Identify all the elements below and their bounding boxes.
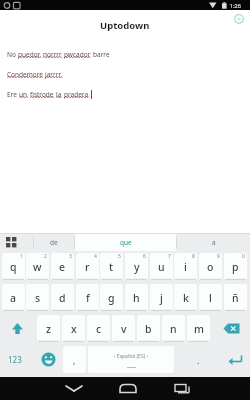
staticText: f [86, 291, 90, 305]
button[interactable]: que [75, 233, 176, 251]
button[interactable]: s [26, 284, 49, 311]
button[interactable]: g [100, 284, 123, 311]
staticText: 123 [8, 354, 22, 365]
staticText: t [109, 260, 114, 274]
button[interactable]: z [37, 315, 60, 342]
button[interactable]: c [87, 315, 110, 342]
staticText: 8 [192, 253, 195, 260]
staticText: o [207, 260, 214, 274]
staticText: 2 [44, 253, 47, 260]
button[interactable]: x [62, 315, 85, 342]
button[interactable] [116, 380, 140, 397]
button[interactable]: r [76, 253, 99, 280]
staticText: Condemore [7, 70, 43, 79]
button[interactable]: f [76, 284, 99, 311]
button[interactable]: de [34, 233, 74, 251]
button[interactable]: b [137, 315, 160, 342]
staticText: norrrr [43, 50, 62, 59]
button[interactable]: n [162, 315, 185, 342]
button[interactable]: 123 [0, 346, 35, 373]
button[interactable]: w [26, 253, 49, 280]
staticText: d [59, 291, 66, 305]
button[interactable]: p [224, 253, 247, 280]
button[interactable]: o [199, 253, 222, 280]
staticText: z [46, 322, 52, 336]
staticText: p [232, 260, 239, 274]
staticText: w [33, 260, 42, 274]
button[interactable]: j [150, 284, 173, 311]
button[interactable]: . [176, 346, 221, 373]
staticText: v [121, 322, 127, 336]
staticText: h [133, 291, 140, 305]
staticText: e [59, 260, 66, 274]
button[interactable]: a [2, 284, 25, 311]
staticText: u [158, 260, 165, 274]
staticText: 1:26 [230, 2, 241, 9]
staticText: l [209, 291, 212, 305]
staticText: , [73, 354, 76, 366]
staticText: . [197, 354, 200, 366]
button[interactable]: e [51, 253, 74, 280]
button[interactable] [0, 315, 35, 342]
staticText: 0 [242, 253, 245, 260]
button[interactable] [170, 380, 194, 397]
staticText: 4 [94, 253, 97, 260]
button[interactable] [6, 237, 17, 248]
staticText: barre [93, 50, 110, 59]
staticText: 1 [20, 253, 23, 260]
staticText: b [145, 322, 152, 336]
staticText: i [184, 260, 187, 274]
button[interactable]: ‹ Español (ES) › [88, 346, 174, 373]
staticText: ‹ Español (ES) › [114, 353, 148, 360]
staticText: pwcador [64, 50, 91, 59]
staticText: 5 [118, 253, 121, 260]
staticText: r [85, 260, 90, 274]
staticText: a [212, 238, 216, 247]
button[interactable]: t [100, 253, 123, 280]
staticText: un [19, 90, 28, 99]
staticText: fistrode [30, 90, 54, 99]
staticText: c [96, 322, 102, 336]
button[interactable]: v [112, 315, 135, 342]
button[interactable]: k [174, 284, 197, 311]
staticText: k [183, 291, 189, 305]
staticText: jarrrr [45, 70, 62, 79]
button[interactable]: h [125, 284, 148, 311]
staticText: q [10, 260, 17, 274]
staticText: de [50, 238, 58, 247]
staticText: g [108, 291, 115, 305]
button[interactable]: u [150, 253, 173, 280]
staticText: 3 [69, 253, 72, 260]
button[interactable] [62, 380, 86, 397]
staticText: Uptodown [100, 19, 150, 32]
staticText: s [35, 291, 41, 305]
staticText: n [170, 322, 177, 336]
button[interactable]: q [2, 253, 25, 280]
staticText: j [160, 291, 163, 305]
staticText: m [194, 322, 204, 336]
staticText: pradera [64, 90, 89, 99]
button[interactable] [36, 346, 61, 373]
staticText: 6 [143, 253, 146, 260]
button[interactable]: m [187, 315, 210, 342]
button[interactable]: d [51, 284, 74, 311]
staticText: la [56, 90, 62, 99]
staticText: a [10, 291, 17, 305]
staticText: Ere [7, 90, 17, 99]
button[interactable]: a [177, 233, 250, 251]
button[interactable]: l [199, 284, 222, 311]
button[interactable] [213, 315, 250, 342]
button[interactable]: ñ [224, 284, 247, 311]
button[interactable] [222, 346, 250, 373]
staticText: y [134, 260, 140, 274]
staticText: No [7, 50, 16, 59]
staticText: x [71, 322, 77, 336]
button[interactable] [233, 13, 245, 25]
button[interactable]: i [174, 253, 197, 280]
staticText: que [120, 238, 132, 247]
button[interactable]: , [63, 346, 86, 373]
staticText: ñ [232, 291, 239, 305]
button[interactable]: y [125, 253, 148, 280]
staticText: 7 [168, 253, 171, 260]
staticText: puedor [18, 50, 41, 59]
